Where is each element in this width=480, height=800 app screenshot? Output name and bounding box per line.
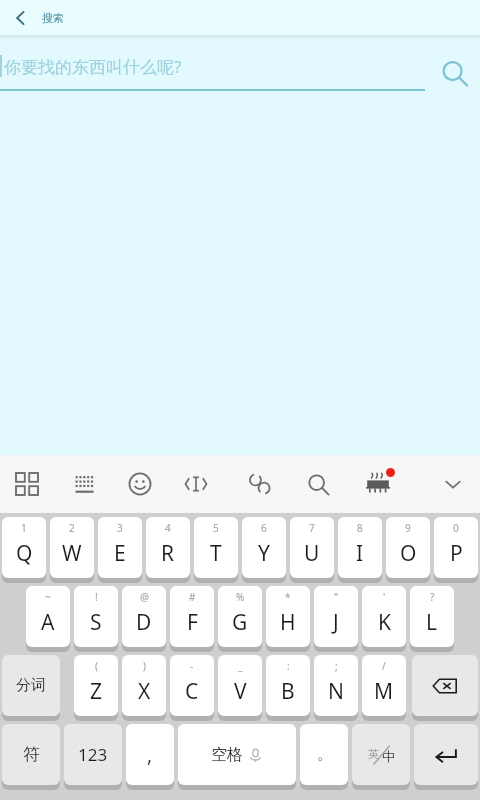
staticText: ; <box>335 659 338 673</box>
staticText: 1 <box>21 521 27 535</box>
staticText: I <box>356 539 364 568</box>
staticText: 英 <box>368 747 379 761</box>
staticText: Y <box>258 539 270 568</box>
button[interactable]: Back <box>0 0 42 35</box>
button[interactable]: / <box>362 655 406 719</box>
staticText: * <box>285 590 291 604</box>
staticText: X <box>138 677 151 706</box>
button[interactable]: ) <box>122 655 166 719</box>
staticText: 5 <box>213 521 219 535</box>
staticText: W <box>62 539 82 568</box>
button[interactable]: 8 <box>338 517 382 581</box>
button[interactable] <box>414 724 478 788</box>
staticText: J <box>333 608 339 637</box>
staticText: _ <box>238 659 243 673</box>
button[interactable]: ~ <box>26 586 70 650</box>
button[interactable]: 6 <box>242 517 286 581</box>
staticText: P <box>450 539 463 568</box>
button[interactable]: * <box>266 586 310 650</box>
button[interactable] <box>412 655 478 719</box>
staticText: 分词 <box>16 676 46 695</box>
button[interactable]: 符 <box>2 724 60 788</box>
staticText: E <box>114 539 126 568</box>
staticText: 123 <box>78 743 108 766</box>
button[interactable]: ; <box>314 655 358 719</box>
staticText: B <box>281 677 295 706</box>
staticText: N <box>328 677 344 706</box>
button[interactable]: Keyboard <box>63 462 107 506</box>
button[interactable]: ' <box>362 586 406 650</box>
button[interactable]: 7 <box>290 517 334 581</box>
staticText: V <box>234 677 247 706</box>
staticText: H <box>280 608 296 637</box>
staticText: F <box>187 608 198 637</box>
staticText: 。 <box>317 745 332 764</box>
staticText: 符 <box>23 744 40 765</box>
staticText: - <box>190 659 194 673</box>
button[interactable]: , <box>126 724 174 788</box>
button[interactable]: - <box>170 655 214 719</box>
button[interactable]: Collapse <box>431 462 475 506</box>
staticText: 2 <box>69 521 75 535</box>
staticText: 0 <box>453 521 459 535</box>
button[interactable]: 9 <box>386 517 430 581</box>
staticText: 3 <box>117 521 123 535</box>
button[interactable]: ? <box>410 586 454 650</box>
staticText: 你要找的东西叫什么呢? <box>4 55 182 78</box>
staticText: ? <box>430 590 435 604</box>
staticText: ) <box>143 659 146 673</box>
staticText: # <box>189 590 196 604</box>
button[interactable]: 123 <box>64 724 122 788</box>
button[interactable]: Theme <box>356 462 400 506</box>
button[interactable]: 0 <box>434 517 478 581</box>
staticText: Z <box>90 677 103 706</box>
button[interactable]: : <box>266 655 310 719</box>
staticText: 4 <box>165 521 171 535</box>
button[interactable]: 3 <box>98 517 142 581</box>
button[interactable]: 分词 <box>2 655 60 719</box>
staticText: : <box>287 659 290 673</box>
staticText: C <box>185 677 199 706</box>
staticText: Q <box>16 539 33 568</box>
button[interactable]: 。 <box>300 724 348 788</box>
button[interactable]: 你要找的东西叫什么呢? <box>0 40 422 92</box>
staticText: 搜索 <box>42 11 64 25</box>
button[interactable]: " <box>314 586 358 650</box>
button[interactable]: 5 <box>194 517 238 581</box>
button[interactable]: Cursor <box>174 462 218 506</box>
staticText: R <box>161 539 175 568</box>
staticText: 8 <box>357 521 363 535</box>
button[interactable]: Clipboard <box>238 462 282 506</box>
staticText: 7 <box>309 521 315 535</box>
button[interactable]: # <box>170 586 214 650</box>
button[interactable]: @ <box>122 586 166 650</box>
button[interactable]: Emoji <box>118 462 162 506</box>
button[interactable]: Grid <box>5 462 49 506</box>
staticText: 6 <box>261 521 267 535</box>
staticText: D <box>136 608 152 637</box>
staticText: % <box>236 590 245 604</box>
button[interactable]: ( <box>74 655 118 719</box>
staticText: A <box>41 608 55 637</box>
staticText: ( <box>95 659 98 673</box>
staticText: S <box>90 608 102 637</box>
staticText: , <box>147 742 153 768</box>
button[interactable]: % <box>218 586 262 650</box>
button[interactable]: ! <box>74 586 118 650</box>
button[interactable]: 4 <box>146 517 190 581</box>
button[interactable]: Search <box>430 49 480 99</box>
staticText: ' <box>383 590 386 604</box>
button[interactable]: 英 <box>352 724 410 788</box>
staticText: " <box>334 590 339 604</box>
staticText: M <box>374 677 394 706</box>
button[interactable]: _ <box>218 655 262 719</box>
staticText: 空格 <box>211 745 243 765</box>
staticText: T <box>210 539 222 568</box>
staticText: U <box>304 539 320 568</box>
button[interactable]: Search <box>296 462 340 506</box>
staticText: ! <box>95 590 98 604</box>
button[interactable]: 2 <box>50 517 94 581</box>
button[interactable]: 1 <box>2 517 46 581</box>
button[interactable]: 空格 <box>178 724 296 788</box>
staticText: ~ <box>45 590 51 604</box>
